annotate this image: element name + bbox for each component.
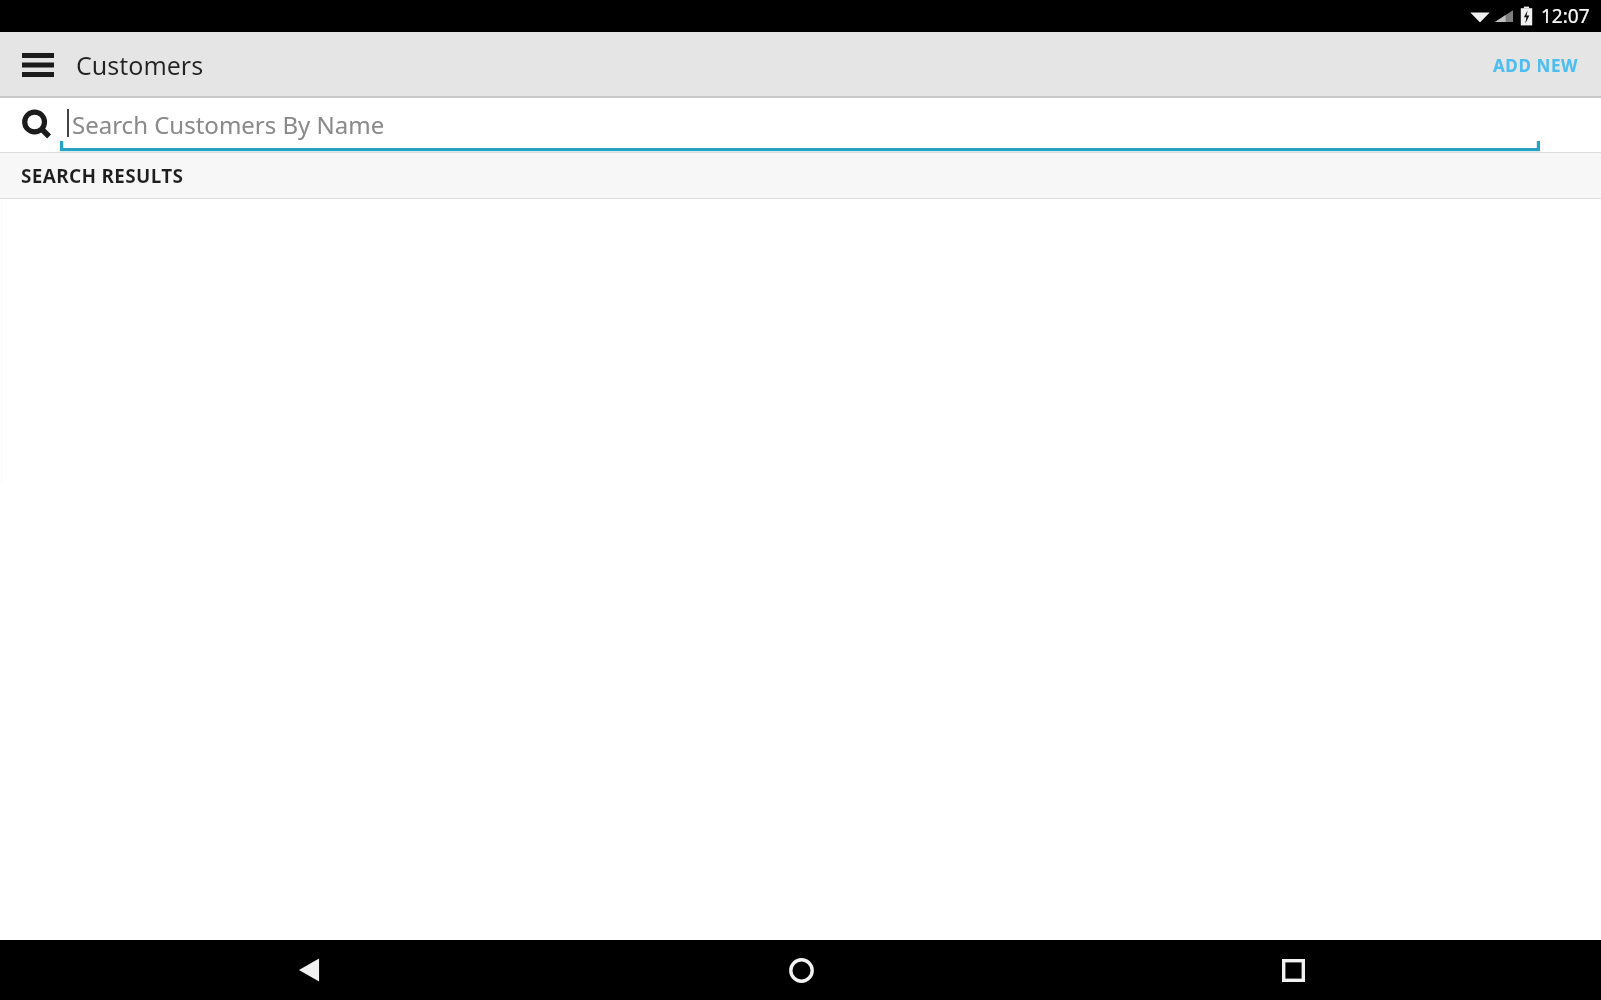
staticText: Customers <box>76 48 204 82</box>
staticText: Search Customers By Name <box>72 108 385 141</box>
staticText: 12:07 <box>1541 3 1590 29</box>
other: Search <box>20 108 54 142</box>
button[interactable]: Back <box>277 940 341 1000</box>
button[interactable]: Recent apps <box>1261 940 1325 1000</box>
button[interactable]: Search <box>0 98 1601 152</box>
staticText: ADD NEW <box>1493 54 1579 77</box>
button[interactable]: ADD NEW <box>1485 44 1587 87</box>
button[interactable]: Home <box>769 940 833 1000</box>
staticText: SEARCH RESULTS <box>21 163 184 189</box>
button[interactable]: Open navigation menu <box>14 41 62 89</box>
